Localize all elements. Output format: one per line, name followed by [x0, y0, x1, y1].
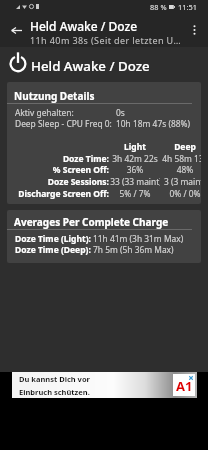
staticText: Nutzung Details	[14, 89, 95, 103]
staticText: Discharge Screen Off:	[7, 188, 109, 200]
staticText: Averages Per Complete Charge	[14, 215, 169, 229]
staticText: Aktiv gehalten:	[15, 107, 74, 118]
staticText: A1	[176, 377, 193, 395]
staticText: 36%	[110, 164, 160, 175]
staticText: 0% / 0%	[160, 188, 201, 199]
staticText: Einbruch schützen.	[19, 387, 90, 397]
staticText: 7h 5m (5h 36m Max)	[93, 244, 174, 255]
staticText: 48%	[160, 164, 201, 175]
staticText: 33 (33 maint)	[110, 176, 160, 187]
staticText: Held Awake / Doze	[30, 18, 138, 34]
button[interactable]: Averages Per Complete Charge	[7, 210, 201, 263]
staticText: 11:51	[178, 2, 197, 12]
staticText: 5% / 7%	[110, 188, 160, 199]
staticText: Doze Time (Deep):	[15, 244, 91, 256]
staticText: Light	[110, 141, 160, 153]
staticText: 3h 42m 22s	[110, 153, 160, 164]
staticText: Deep Sleep - CPU Freq 0:	[15, 118, 112, 129]
staticText: Deep	[160, 141, 201, 153]
staticText: % Screen Off:	[7, 164, 109, 176]
button[interactable]: Power	[8, 53, 28, 73]
staticText: Held Awake / Doze	[31, 57, 150, 75]
button[interactable]: Nutzung Details	[7, 82, 201, 204]
staticText: 11h 41m (3h 31m Max)	[93, 233, 184, 244]
staticText: 10h 18m 47s (88%)	[116, 118, 190, 129]
button[interactable]: More options	[181, 17, 207, 43]
staticText: Doze Sessions:	[7, 176, 109, 188]
staticText: 88 %	[150, 2, 167, 12]
button[interactable]: Du kannst Dich vor	[12, 372, 197, 398]
staticText: Doze Time:	[7, 153, 109, 165]
button[interactable]: Back	[0, 14, 32, 46]
staticText: 3 (3 maint)	[160, 176, 201, 187]
staticText: 4h 58m 13s	[160, 153, 201, 164]
staticText: 0s	[116, 107, 125, 118]
staticText: Du kannst Dich vor	[19, 374, 90, 384]
staticText: Doze Time (Light):	[15, 233, 91, 245]
staticText: 11h 40m 38s (Seit der letzten U…	[30, 34, 181, 46]
